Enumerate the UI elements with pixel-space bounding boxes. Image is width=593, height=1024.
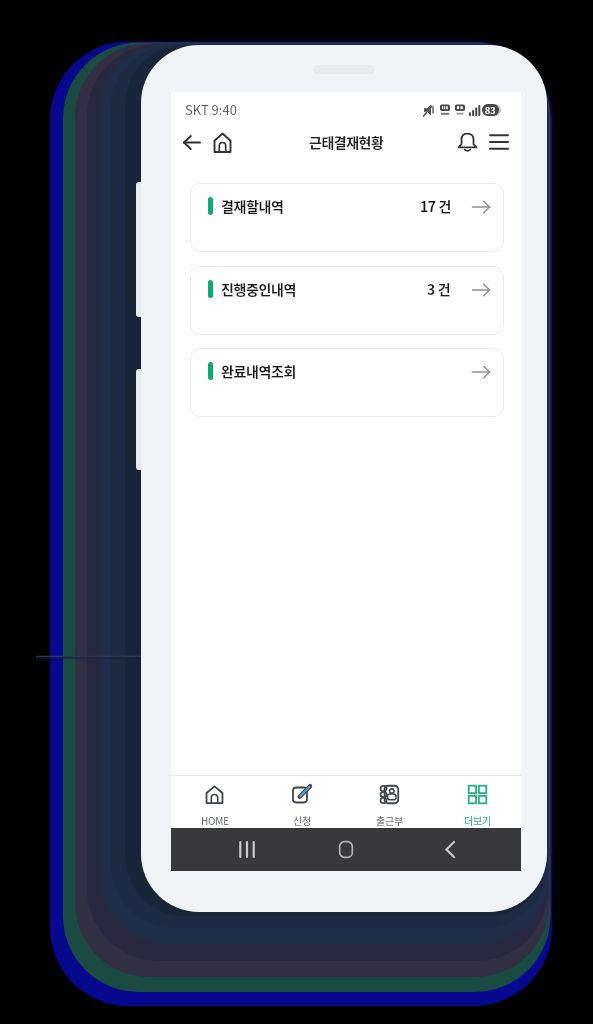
button[interactable] [404,828,521,871]
button[interactable]: 신청 [258,776,345,828]
staticText: 신청 [293,813,311,827]
button[interactable]: 출근부 [345,776,433,828]
button[interactable]: 진행중인내역 [190,266,504,335]
staticText: SKT 9:40 [185,100,237,119]
staticText: 17 건 [420,196,451,216]
staticText: 완료내역조회 [221,361,296,381]
staticText: HOME [201,813,229,827]
button[interactable] [457,132,478,153]
staticText: 결재할내역 [221,196,284,216]
button[interactable] [287,828,404,871]
staticText: 더보기 [464,813,491,827]
staticText: 3 건 [427,279,451,299]
button[interactable]: 완료내역조회 [190,348,504,417]
staticText: 근태결재현황 [309,132,384,152]
button[interactable] [213,132,232,153]
button[interactable]: 결재할내역 [190,183,504,252]
button[interactable] [489,134,509,150]
staticText: 진행중인내역 [221,279,296,299]
button[interactable] [180,132,205,153]
button[interactable] [171,828,287,871]
staticText: 출근부 [376,813,403,827]
button[interactable]: 더보기 [433,776,521,828]
staticText: 83 [485,104,496,116]
button[interactable]: HOME [171,776,258,828]
